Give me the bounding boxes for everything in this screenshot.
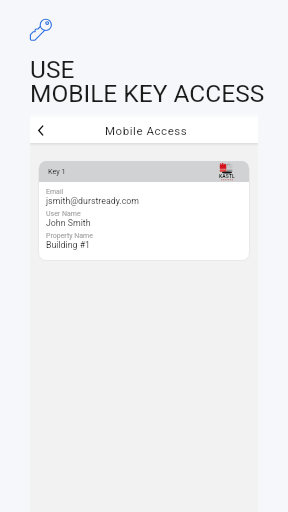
staticText: Property Name [46, 232, 93, 240]
staticText: John Smith [46, 218, 91, 228]
staticText: Mobile Access [105, 124, 188, 137]
staticText: jsmith@durstready.com [46, 196, 139, 206]
button[interactable]: Back [30, 118, 51, 143]
other: Mobile key [29, 18, 52, 41]
staticText: Key 1 [48, 167, 66, 176]
staticText: Building #1 [46, 240, 91, 250]
staticText: User Name [46, 210, 81, 218]
staticText: MOBILE KEY ACCESS [30, 79, 265, 108]
staticText: KASTLE [219, 173, 236, 179]
staticText: USE [30, 55, 75, 84]
button[interactable]: Key 1 [39, 161, 249, 260]
staticText: Email [46, 188, 64, 196]
